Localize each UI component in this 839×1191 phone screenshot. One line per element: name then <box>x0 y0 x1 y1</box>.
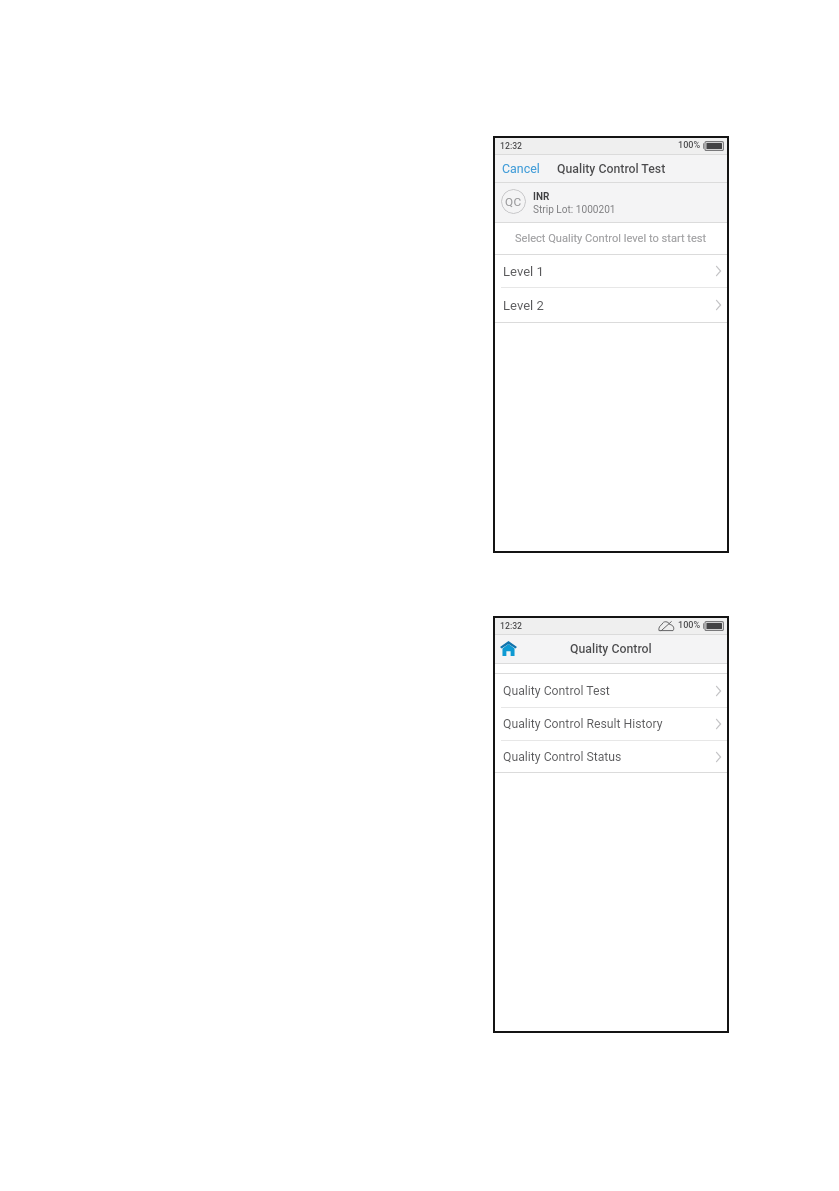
staticText: Level 1 <box>503 264 544 279</box>
staticText: Strip Lot: 1000201 <box>533 204 616 216</box>
staticText: Cancel <box>502 161 540 176</box>
staticText: 12:32 <box>500 141 523 151</box>
staticText: QC <box>505 195 522 209</box>
staticText: 100% <box>678 620 701 631</box>
staticText: Quality Control Result History <box>503 717 663 731</box>
button[interactable]: Quality Control Result History <box>495 708 727 740</box>
staticText: 12:32 <box>500 621 523 631</box>
staticText: Level 2 <box>503 298 544 313</box>
button[interactable]: Level 2 <box>495 288 727 322</box>
staticText: Quality Control <box>570 642 652 656</box>
staticText: 100% <box>678 140 701 151</box>
button[interactable]: Quality Control Status <box>495 741 727 772</box>
staticText: Select Quality Control level to start te… <box>515 232 707 245</box>
staticText: INR <box>533 191 550 203</box>
button[interactable]: Quality Control Test <box>495 674 727 707</box>
button[interactable]: Home <box>495 637 522 662</box>
staticText: Quality Control Test <box>557 162 666 176</box>
staticText: Quality Control Status <box>503 750 622 764</box>
button[interactable]: Level 1 <box>495 255 727 287</box>
button[interactable]: Cancel <box>495 155 546 182</box>
staticText: Quality Control Test <box>503 684 610 698</box>
